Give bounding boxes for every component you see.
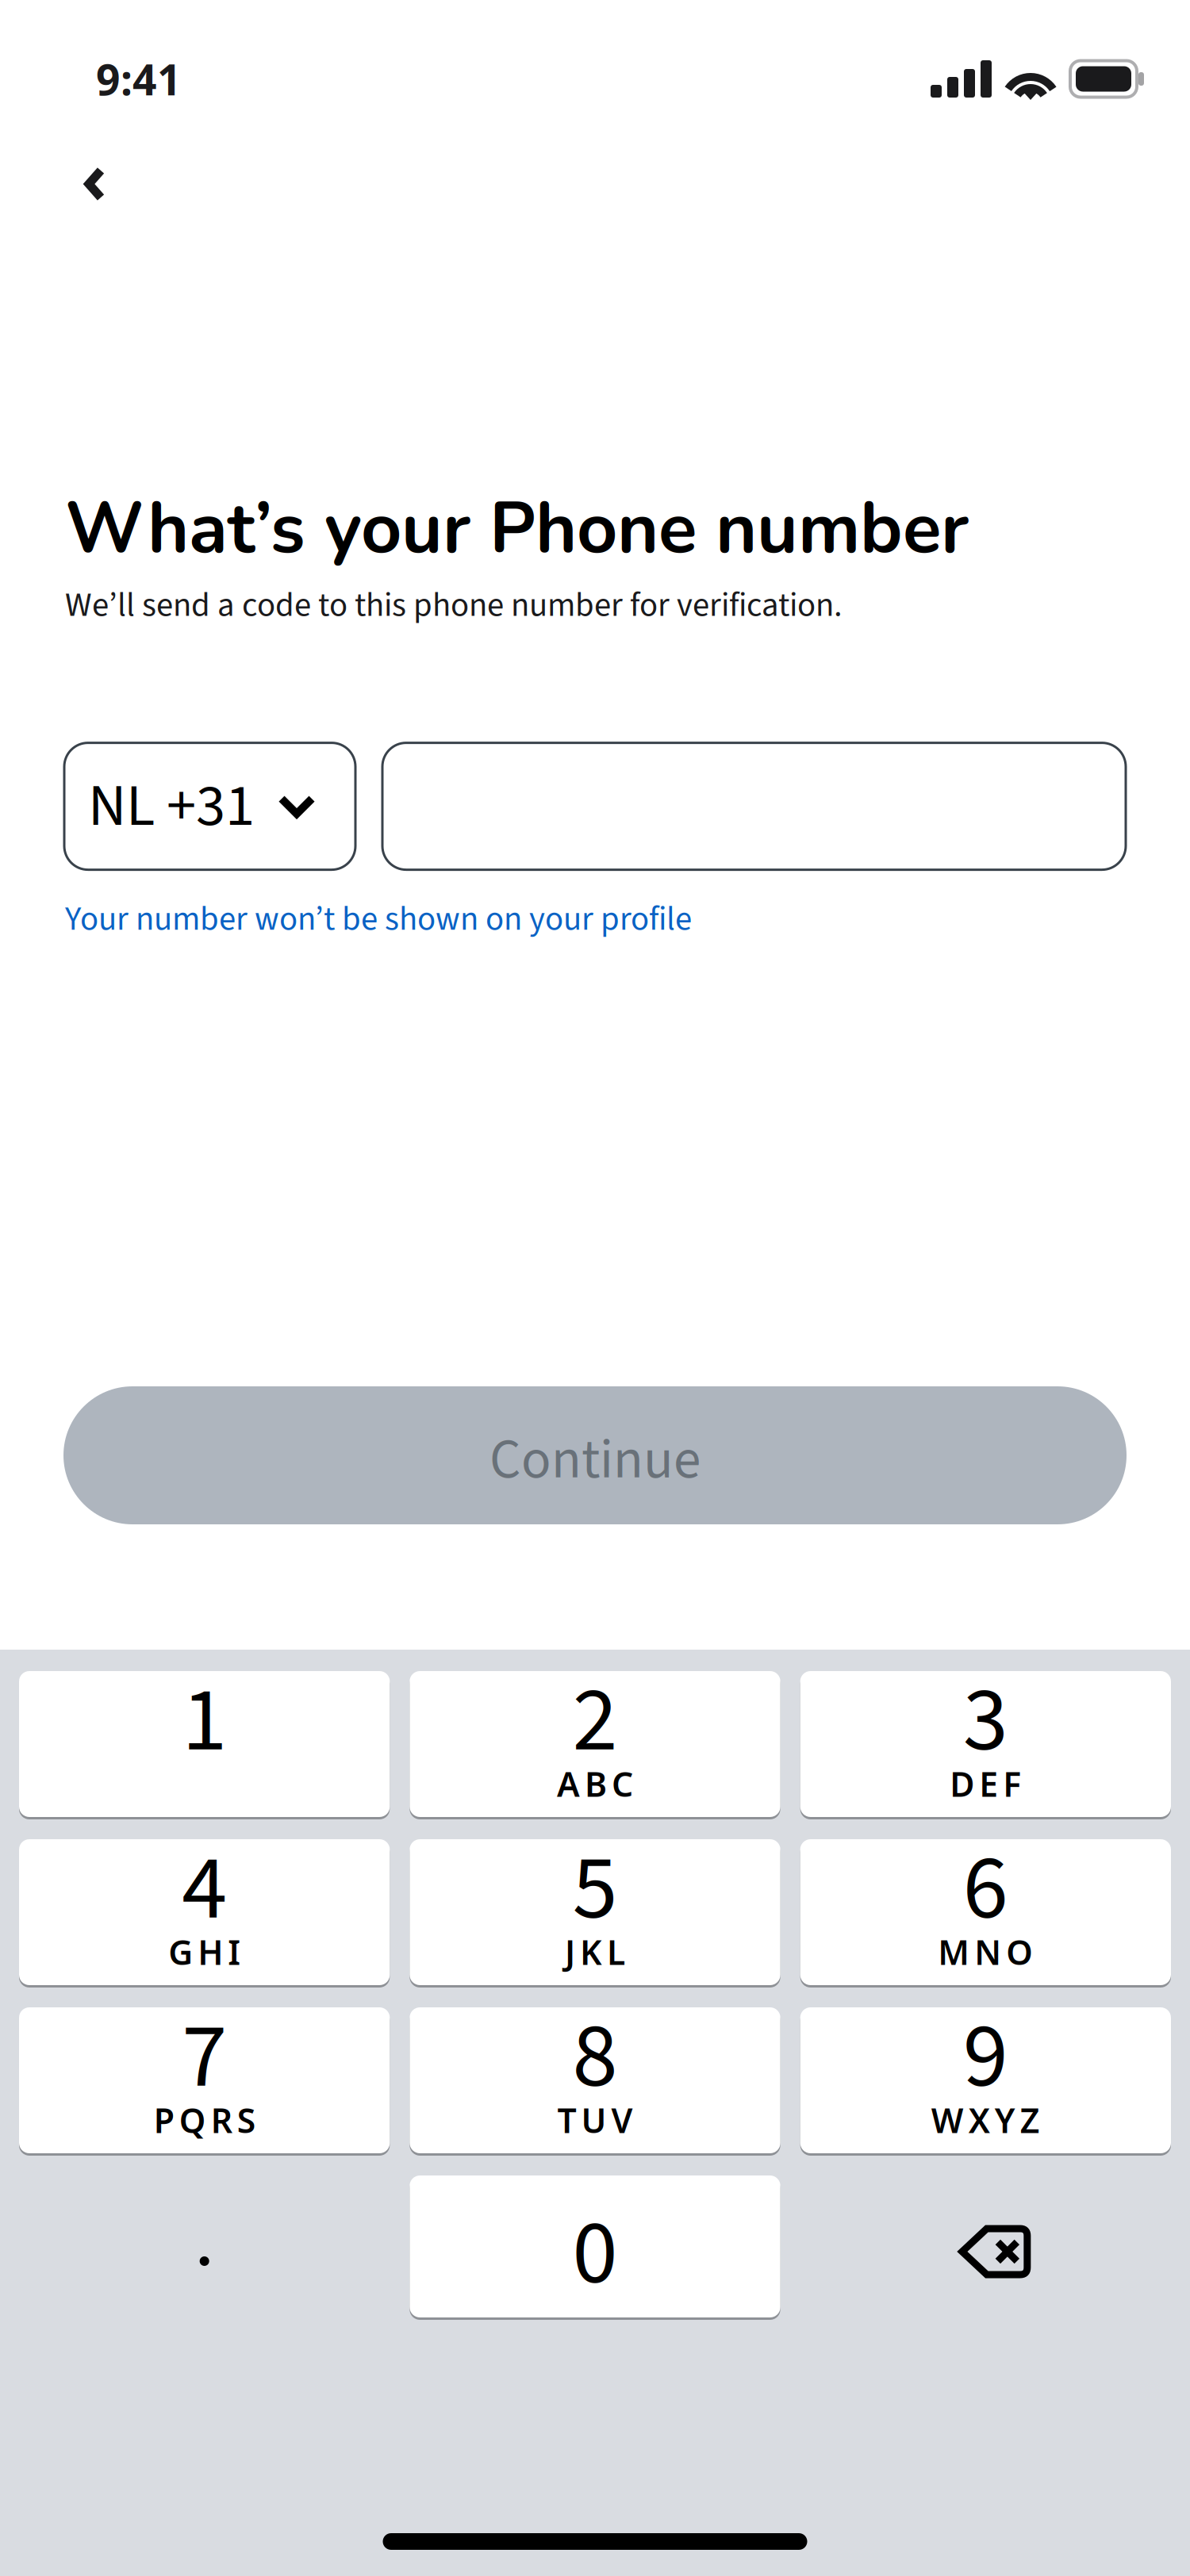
staticText: PQRS	[154, 2097, 255, 2143]
button[interactable]: Continue	[63, 1386, 1127, 1524]
staticText: 0	[572, 2189, 618, 2319]
button[interactable]: 2	[410, 1671, 780, 1819]
staticText: MNO	[938, 1929, 1033, 1975]
button[interactable]: 5	[410, 1839, 780, 1988]
button[interactable]: 8	[410, 2007, 780, 2156]
button[interactable]: Country code NL +31	[64, 743, 355, 870]
staticText: 7	[182, 1993, 227, 2122]
staticText: 5	[572, 1824, 618, 1954]
staticText: JKL	[565, 1929, 625, 1975]
button[interactable]: 7	[19, 2007, 390, 2156]
button[interactable]: 4	[19, 1839, 390, 1988]
button[interactable]: 0	[410, 2175, 780, 2320]
button[interactable]: 6	[800, 1839, 1171, 1988]
staticText: TUV	[557, 2097, 633, 2143]
staticText: GHI	[168, 1929, 241, 1975]
staticText: Your number won’t be shown on your profi…	[65, 895, 692, 943]
button[interactable]: Phone number	[382, 743, 1126, 870]
staticText: Continue	[489, 1421, 701, 1499]
staticText: 6	[963, 1824, 1008, 1954]
staticText: 3	[963, 1656, 1008, 1786]
button[interactable]: 3	[800, 1671, 1171, 1819]
button[interactable]: 9	[800, 2007, 1171, 2156]
button[interactable]: Period	[19, 2175, 390, 2320]
staticText: DEF	[950, 1761, 1021, 1807]
staticText: 2	[572, 1656, 618, 1786]
staticText: 9	[963, 1993, 1008, 2122]
staticText: 9:41	[96, 50, 182, 108]
staticText: 8	[572, 1993, 618, 2122]
staticText: NL +31	[88, 764, 255, 848]
button[interactable]: Delete	[800, 2175, 1171, 2320]
button[interactable]: 1	[19, 1671, 390, 1819]
button[interactable]: Back	[0, 98, 146, 226]
staticText: ABC	[557, 1761, 633, 1807]
staticText: 1	[182, 1656, 227, 1786]
staticText: 4	[182, 1824, 227, 1954]
staticText: WXYZ	[931, 2097, 1040, 2143]
staticText: We’ll send a code to this phone number f…	[65, 581, 843, 629]
staticText: What’s your Phone number	[65, 481, 969, 577]
